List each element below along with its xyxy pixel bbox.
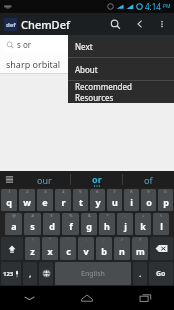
button[interactable]: * — [99, 213, 115, 235]
button[interactable]: Recommended Resources — [68, 81, 174, 103]
staticText: 4:14 — [145, 1, 161, 12]
staticText: of — [144, 174, 153, 186]
staticText: 9 — [147, 189, 150, 194]
staticText: ' — [68, 237, 69, 242]
button[interactable]: 0 — [158, 189, 173, 211]
button[interactable]: + — [135, 213, 151, 235]
staticText: & — [88, 213, 91, 218]
staticText: : — [85, 237, 87, 242]
staticText: , — [29, 267, 32, 279]
staticText: $ — [50, 213, 53, 218]
staticText: English — [81, 269, 105, 279]
button[interactable]: ' — [60, 237, 76, 260]
button[interactable]: Next — [68, 35, 174, 57]
button[interactable]: % — [62, 213, 79, 235]
button[interactable]: our — [18, 171, 70, 188]
staticText: e — [42, 196, 48, 208]
staticText: About — [75, 64, 98, 75]
button[interactable]: 9 — [141, 189, 156, 211]
staticText: # — [31, 213, 34, 218]
staticText: ( — [160, 213, 162, 218]
staticText: o — [146, 196, 152, 208]
staticText: ; — [103, 237, 105, 242]
staticText: 5 — [79, 189, 82, 194]
button[interactable]: & — [81, 213, 97, 235]
button[interactable]: Numbers and symbols — [1, 262, 21, 285]
staticText: Next — [75, 41, 93, 52]
staticText: m — [136, 245, 145, 257]
button[interactable]: Home — [58, 286, 116, 310]
button[interactable]: Shift — [1, 237, 23, 260]
button[interactable]: 4 — [55, 189, 71, 211]
button[interactable]: Recent apps — [116, 286, 174, 310]
button[interactable]: 6 — [90, 189, 105, 211]
button[interactable]: ( — [153, 213, 169, 235]
button[interactable]: / — [114, 237, 130, 260]
button[interactable]: More options — [152, 13, 172, 35]
button[interactable]: Suggestions — [0, 171, 18, 188]
button[interactable]: s or — [3, 37, 171, 52]
button[interactable]: , — [23, 262, 37, 285]
button[interactable]: 3 — [37, 189, 53, 211]
staticText: b — [101, 245, 107, 257]
button[interactable]: 1 — [1, 189, 17, 211]
staticText: u — [112, 196, 118, 208]
button[interactable]: . — [133, 262, 147, 285]
button[interactable]: $ — [43, 213, 60, 235]
staticText: or — [92, 173, 102, 185]
staticText: n — [119, 245, 125, 257]
staticText: g — [86, 220, 92, 232]
staticText: q — [6, 196, 12, 208]
button[interactable]: About — [68, 58, 174, 80]
button[interactable]: 8 — [124, 189, 139, 211]
staticText: def — [6, 21, 16, 29]
staticText: / — [121, 237, 123, 242]
staticText: . — [139, 267, 142, 279]
staticText: sharp orbital — [6, 58, 61, 70]
button[interactable]: Change language — [39, 262, 53, 285]
staticText: our — [37, 174, 52, 186]
staticText: z — [30, 245, 35, 257]
button[interactable]: @ — [5, 213, 22, 235]
staticText: Recommended Resources — [75, 81, 170, 103]
staticText: Go — [156, 269, 166, 279]
button[interactable]: of — [123, 171, 174, 188]
button[interactable]: ; — [96, 237, 112, 260]
button[interactable]: # — [24, 213, 41, 235]
button[interactable]: 2 — [19, 189, 35, 211]
staticText: 1 — [8, 189, 11, 194]
button[interactable]: Hide keyboard — [0, 286, 58, 310]
button[interactable]: Go — [149, 262, 173, 285]
button[interactable]: sharp orbital — [0, 54, 174, 73]
staticText: i — [130, 196, 133, 208]
staticText: h — [104, 220, 110, 232]
staticText: ChemDef — [21, 17, 70, 32]
staticText: j — [124, 220, 127, 232]
staticText: 7 — [113, 189, 116, 194]
staticText: v — [83, 245, 89, 257]
staticText: 8 — [130, 189, 133, 194]
button[interactable]: Collapse — [128, 13, 152, 35]
button[interactable]: : — [78, 237, 94, 260]
button[interactable]: 7 — [107, 189, 122, 211]
button[interactable]: Backspace — [150, 237, 173, 260]
staticText: y — [95, 196, 101, 208]
button[interactable]: - — [117, 213, 133, 235]
button[interactable]: ? — [132, 237, 148, 260]
staticText: " — [49, 237, 51, 242]
staticText: t — [79, 196, 83, 208]
staticText: 4 — [62, 189, 65, 194]
button[interactable]: " — [42, 237, 58, 260]
button[interactable]: Search — [102, 13, 128, 35]
staticText: - — [124, 213, 126, 218]
staticText: * — [106, 213, 109, 218]
button[interactable]: English — [55, 262, 131, 285]
staticText: r — [61, 196, 66, 208]
button[interactable]: or — [71, 171, 122, 188]
staticText: 2 — [26, 189, 29, 194]
staticText: d — [49, 220, 55, 232]
button[interactable]: ! — [25, 237, 40, 260]
button[interactable]: 5 — [73, 189, 88, 211]
staticText: 0 — [164, 189, 167, 194]
staticText: p — [163, 196, 169, 208]
